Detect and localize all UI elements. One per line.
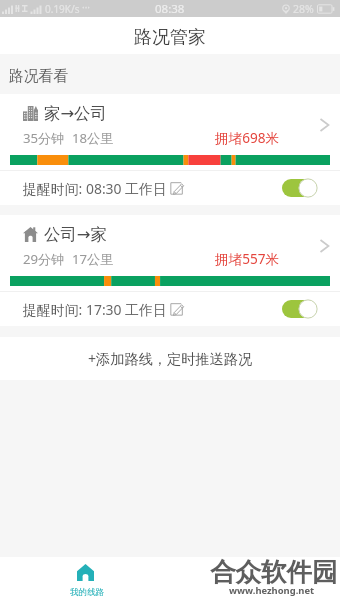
staticText: 0.19K/s [45, 2, 80, 16]
button[interactable]: 编辑提醒时间 [170, 181, 184, 195]
other: 查看详情 [319, 117, 330, 133]
staticText: 17公里 [72, 250, 114, 268]
staticText: 17:30 工作日 [86, 300, 167, 319]
staticText: www.hezhong.net [229, 584, 315, 597]
staticText: 路况管家 [134, 26, 206, 49]
button[interactable]: 提醒开关 [282, 178, 318, 198]
button[interactable]: 家→公司 [0, 94, 340, 155]
staticText: ··· [82, 0, 91, 14]
staticText: 合众软件园 [210, 556, 338, 588]
staticText: 18公里 [72, 129, 114, 147]
button[interactable]: 我的线路 [0, 557, 170, 604]
staticText: 提醒时间: [23, 300, 86, 319]
button[interactable]: +添加路线，定时推送路况 [0, 337, 340, 380]
staticText: 公司→家 [44, 224, 107, 245]
staticText: 拥堵557米 [215, 249, 280, 268]
staticText: 路况看看 [9, 67, 69, 86]
staticText: 35分钟 [23, 129, 65, 147]
staticText: 拥堵698米 [215, 128, 280, 147]
other: 查看详情 [319, 238, 330, 254]
button[interactable]: 公司→家 [0, 215, 340, 276]
staticText: 我的线路 [70, 587, 105, 598]
staticText: +添加路线，定时推送路况 [88, 349, 253, 368]
staticText: 28% [293, 2, 314, 16]
staticText: 08:30 工作日 [86, 179, 167, 198]
staticText: 提醒时间: [23, 179, 86, 198]
button[interactable]: 编辑提醒时间 [170, 302, 184, 316]
staticText: 08:38 [155, 1, 185, 17]
staticText: 29分钟 [23, 250, 65, 268]
staticText: 家→公司 [44, 103, 107, 124]
button[interactable]: 提醒开关 [282, 299, 318, 319]
